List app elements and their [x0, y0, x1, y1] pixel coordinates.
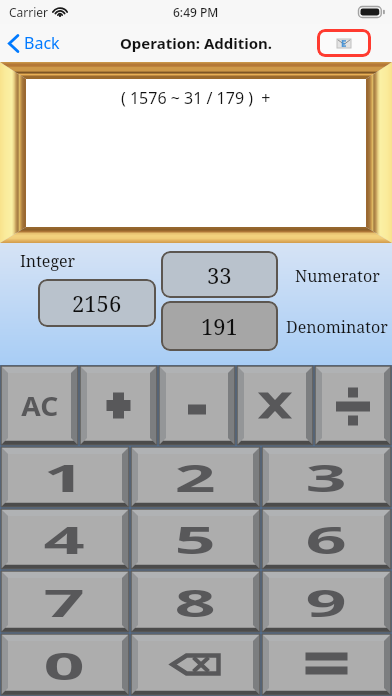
button[interactable]: 3 — [262, 447, 391, 507]
button[interactable]: Minus — [159, 366, 235, 445]
staticText: 6:49 PM — [173, 4, 219, 20]
staticText: 2 — [175, 452, 217, 502]
staticText: 6 — [305, 514, 348, 564]
button[interactable]: 8 — [131, 571, 260, 632]
button[interactable]: 7 — [1, 571, 129, 632]
staticText: 4 — [43, 514, 86, 564]
staticText: 33 — [207, 260, 232, 290]
staticText: Numerator — [295, 265, 380, 287]
staticText: 9 — [305, 577, 348, 627]
staticText: 191 — [201, 311, 238, 341]
staticText: Back — [24, 32, 60, 54]
button[interactable]: Back — [0, 26, 70, 60]
button[interactable]: 2156 — [38, 279, 156, 327]
button[interactable]: Plus — [80, 366, 157, 445]
staticText: 3 — [305, 452, 348, 502]
button[interactable]: 4 — [1, 509, 129, 569]
button[interactable]: Equals — [262, 634, 391, 695]
button[interactable]: 9 — [262, 571, 391, 632]
staticText: 8 — [175, 577, 217, 627]
button[interactable]: Multiply — [237, 366, 313, 445]
button[interactable]: 5 — [131, 509, 260, 569]
button[interactable]: 6 — [262, 509, 391, 569]
staticText: 0 — [43, 640, 86, 690]
staticText: ( 1576 ~ 31 / 179 ) + — [121, 87, 271, 109]
button[interactable]: 2 — [131, 447, 260, 507]
staticText: 5 — [175, 514, 217, 564]
button[interactable]: 1 — [1, 447, 129, 507]
staticText: Carrier — [9, 4, 49, 20]
staticText: Operation: Addition. — [120, 33, 273, 53]
button[interactable]: Backspace — [131, 634, 260, 695]
button[interactable]: 191 — [161, 301, 278, 351]
button[interactable]: Email — [317, 29, 371, 57]
button[interactable]: 33 — [161, 251, 278, 298]
staticText: Integer — [20, 250, 76, 272]
button[interactable]: 0 — [1, 634, 129, 695]
button[interactable]: AC — [1, 366, 78, 445]
staticText: 7 — [43, 577, 86, 627]
staticText: AC — [21, 387, 59, 424]
staticText: Denominator — [286, 316, 388, 338]
staticText: 2156 — [72, 288, 122, 318]
button[interactable]: Divide — [315, 366, 391, 445]
staticText: 1 — [43, 452, 86, 502]
